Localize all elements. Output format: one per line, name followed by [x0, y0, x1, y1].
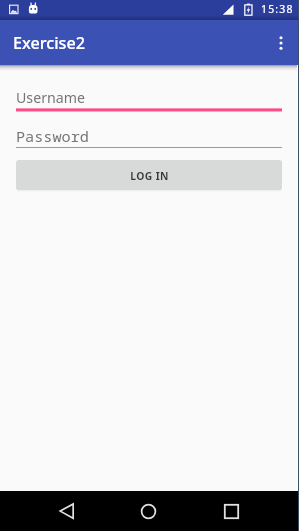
staticText: LOG IN	[130, 169, 169, 183]
staticText: 15:38	[261, 2, 294, 16]
button[interactable]: Recent apps	[210, 491, 253, 531]
button[interactable]: More options	[263, 25, 299, 61]
button[interactable]: LOG IN	[16, 160, 282, 190]
staticText: Username	[16, 88, 86, 107]
staticText: Exercise2	[13, 32, 86, 54]
button[interactable]: Home	[127, 491, 170, 531]
button[interactable]: Back	[47, 491, 90, 531]
staticText: Password	[16, 126, 89, 147]
